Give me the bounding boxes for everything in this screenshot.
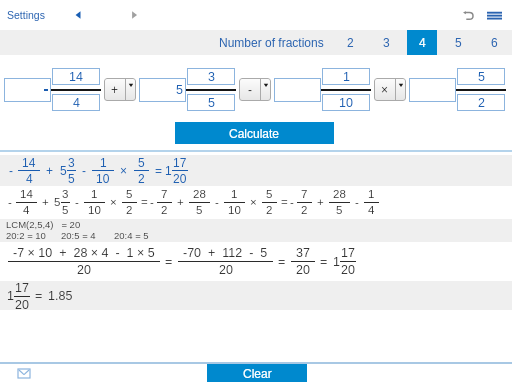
staticText: 20	[341, 263, 355, 277]
staticText: 1	[91, 188, 98, 201]
staticText: 4	[26, 172, 33, 185]
staticText: -	[215, 196, 219, 209]
button[interactable]: 5	[443, 30, 473, 55]
staticText: -70 + 112 - 5	[183, 246, 268, 260]
button[interactable]: 6	[479, 30, 509, 55]
button[interactable]: Previous	[75, 8, 86, 22]
button[interactable]	[4, 78, 51, 102]
staticText: -	[8, 196, 12, 209]
button[interactable]: -	[239, 78, 271, 101]
staticText: 5	[60, 164, 67, 177]
staticText: 1	[333, 255, 340, 269]
button[interactable]: Next	[131, 8, 142, 22]
staticText: 20	[219, 263, 233, 277]
staticText: 5	[176, 83, 183, 97]
button[interactable]: 1	[322, 68, 370, 85]
staticText: 20	[77, 263, 91, 277]
staticText: -	[150, 196, 154, 209]
staticText: 5	[336, 204, 343, 217]
button[interactable]: 2	[457, 94, 505, 111]
staticText: 4	[73, 96, 80, 110]
staticText: 20	[296, 263, 310, 277]
staticText: =	[155, 164, 163, 177]
staticText: +	[317, 196, 324, 209]
staticText: 5	[478, 70, 485, 84]
staticText: 2	[301, 204, 308, 217]
staticText: 5	[68, 172, 75, 185]
button[interactable]: 4	[52, 94, 100, 111]
staticText: 2	[138, 172, 145, 185]
staticText: 2	[347, 36, 354, 49]
staticText: 14	[22, 156, 36, 169]
staticText: 4	[419, 36, 426, 49]
staticText: Settings	[7, 9, 45, 21]
button[interactable]: 10	[322, 94, 370, 111]
staticText: 20:4 = 5	[114, 230, 149, 241]
staticText: +	[42, 196, 49, 209]
button[interactable]: 3	[371, 30, 401, 55]
staticText: 17	[15, 281, 29, 295]
staticText: ×	[250, 196, 257, 209]
button[interactable]: Menu	[487, 12, 502, 19]
staticText: =	[278, 255, 286, 269]
button[interactable]: Calculate	[175, 122, 334, 144]
staticText: ×	[120, 164, 128, 177]
staticText: -7 × 10 + 28 × 4 - 1 × 5	[13, 246, 155, 260]
staticText: 7	[161, 188, 168, 201]
staticText: 7	[301, 188, 308, 201]
staticText: +	[177, 196, 184, 209]
staticText: 14	[20, 188, 33, 201]
staticText: 28	[333, 188, 346, 201]
button[interactable]: Clear	[207, 364, 307, 382]
staticText: 1.85	[48, 289, 73, 303]
button[interactable]: Email	[18, 369, 30, 378]
staticText: 20:2 = 10	[6, 230, 46, 241]
button[interactable]: 4	[407, 30, 437, 55]
staticText: 28	[193, 188, 206, 201]
staticText: 2	[266, 204, 273, 217]
button[interactable]: Settings	[7, 9, 45, 21]
staticText: =	[35, 289, 43, 303]
staticText: ×	[110, 196, 117, 209]
staticText: 20	[15, 298, 29, 310]
staticText: 37	[296, 246, 310, 260]
button[interactable]	[274, 78, 321, 102]
button[interactable]: 14	[52, 68, 100, 85]
button[interactable]	[409, 78, 456, 102]
staticText: 5	[208, 96, 215, 110]
button[interactable]: +	[104, 78, 136, 101]
staticText: 1	[343, 70, 350, 84]
button[interactable]: 3	[187, 68, 235, 85]
staticText: 2	[126, 204, 133, 217]
staticText: 5	[62, 204, 69, 217]
button[interactable]: 5	[139, 78, 186, 102]
staticText: 17	[341, 246, 355, 260]
staticText: 5	[266, 188, 273, 201]
staticText: 20:5 = 4	[61, 230, 96, 241]
button[interactable]: 2	[335, 30, 365, 55]
staticText: 10	[339, 96, 353, 110]
staticText: =	[141, 196, 148, 209]
staticText: 10	[96, 172, 110, 185]
button[interactable]: Undo	[463, 11, 474, 20]
button[interactable]: 5	[457, 68, 505, 85]
staticText: 3	[383, 36, 390, 49]
staticText: LCM(2,5,4) = 20	[6, 219, 81, 230]
staticText: =	[320, 255, 328, 269]
button[interactable]: 5	[187, 94, 235, 111]
staticText: 20	[173, 172, 187, 185]
staticText: -	[290, 196, 294, 209]
staticText: 6	[491, 36, 498, 49]
button[interactable]: ×	[374, 78, 406, 101]
staticText: -	[355, 196, 359, 209]
staticText: 2	[161, 204, 168, 217]
staticText: -	[9, 164, 13, 177]
staticText: 1	[231, 188, 238, 201]
staticText: 3	[68, 156, 75, 169]
staticText: 3	[208, 70, 215, 84]
staticText: 4	[368, 204, 375, 217]
staticText: =	[281, 196, 288, 209]
staticText: 14	[69, 70, 83, 84]
staticText: Calculate	[229, 127, 280, 140]
staticText: -	[75, 196, 79, 209]
